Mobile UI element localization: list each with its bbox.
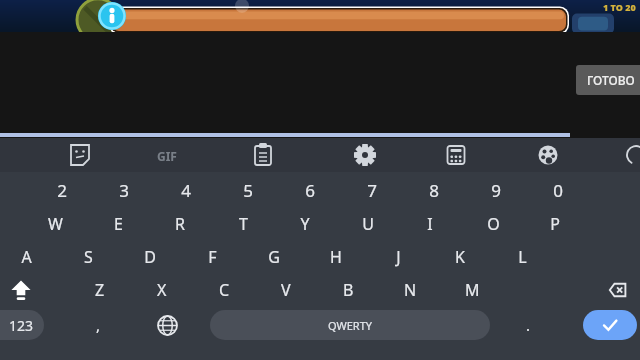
button[interactable]: More [549,138,640,172]
button[interactable]: F [186,240,238,273]
staticText: 3 [119,179,129,202]
button[interactable]: S [62,240,114,273]
button[interactable]: V [260,273,312,306]
staticText: G [268,246,280,268]
staticText: QWERTY [328,318,373,333]
button[interactable]: G [248,240,300,273]
staticText: ГОТОВО [587,72,635,88]
button[interactable]: W [29,207,81,240]
staticText: 7 [367,179,377,202]
staticText: R [175,213,185,235]
button[interactable]: Z [74,273,126,306]
staticText: K [455,246,465,268]
staticText: 0 [553,179,563,202]
button[interactable]: 4 [160,174,212,207]
staticText: 123 [9,316,34,335]
staticText: 8 [429,179,439,202]
button[interactable]: ГОТОВО [576,65,640,95]
button[interactable]: Change language [145,306,189,344]
button[interactable]: E [92,207,144,240]
button[interactable]: Shift [0,273,42,306]
button[interactable]: 0 [532,174,584,207]
staticText: GIF [157,148,177,164]
staticText: M [465,279,480,301]
button[interactable]: B [322,273,374,306]
staticText: T [239,213,248,235]
staticText: W [48,213,63,235]
staticText: I [427,213,433,235]
staticText: B [343,279,354,301]
button[interactable]: Info [98,2,126,30]
staticText: A [21,246,32,268]
button[interactable]: Theme [458,138,549,172]
staticText: X [157,279,167,301]
staticText: F [208,246,217,268]
button[interactable]: 6 [284,174,336,207]
staticText: D [144,246,156,268]
button[interactable]: 5 [222,174,274,207]
button[interactable]: GIF [92,138,184,172]
button[interactable]: X [136,273,188,306]
button[interactable]: U [342,207,394,240]
button[interactable]: O [467,207,519,240]
staticText: P [550,213,560,235]
staticText: 5 [243,179,253,202]
button[interactable]: H [310,240,362,273]
button[interactable]: M [446,273,498,306]
button[interactable]: D [124,240,176,273]
button[interactable]: I [404,207,456,240]
staticText: , [96,315,101,335]
button[interactable]: Sticker [0,138,92,172]
staticText: . [526,315,531,335]
button[interactable]: T [217,207,269,240]
staticText: S [84,246,93,268]
button[interactable]: 3 [98,174,150,207]
button[interactable]: 123 [0,310,44,340]
button[interactable]: Y [279,207,331,240]
button[interactable]: C [198,273,250,306]
staticText: C [219,279,230,301]
staticText: V [281,279,291,301]
staticText: Y [300,213,310,235]
button[interactable]: R [154,207,206,240]
staticText: 9 [491,179,501,202]
button[interactable]: 9 [470,174,522,207]
staticText: Z [95,279,105,301]
staticText: 1 TO 20 [603,1,636,13]
staticText: 2 [57,179,67,202]
button[interactable]: . [505,306,551,344]
button[interactable]: J [372,240,424,273]
button[interactable]: Backspace [590,273,640,306]
staticText: J [396,246,401,268]
button[interactable]: Enter [583,310,637,340]
staticText: O [487,213,500,235]
button[interactable]: N [384,273,436,306]
button[interactable]: 7 [346,174,398,207]
button[interactable]: Calculator [367,138,458,172]
button[interactable]: 2 [36,174,88,207]
button[interactable]: , [74,306,122,344]
staticText: L [518,246,527,268]
staticText: 4 [181,179,191,202]
staticText: U [362,213,374,235]
button[interactable]: A [0,240,52,273]
staticText: 6 [305,179,315,202]
button[interactable]: L [496,240,548,273]
button[interactable]: P [529,207,581,240]
button[interactable]: QWERTY [210,310,490,340]
staticText: H [330,246,342,268]
button[interactable]: Settings [276,138,367,172]
staticText: E [114,213,123,235]
button[interactable]: K [434,240,486,273]
button[interactable]: 8 [408,174,460,207]
staticText: N [404,279,417,301]
button[interactable]: Clipboard [184,138,276,172]
